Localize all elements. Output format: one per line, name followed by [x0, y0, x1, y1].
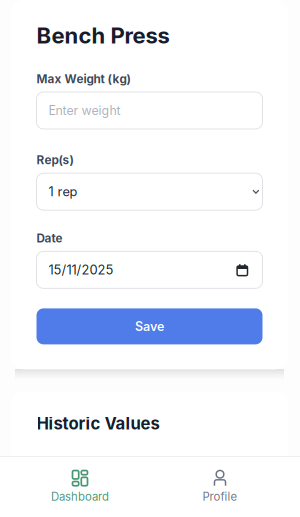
button[interactable]: 15/11/2025: [36, 251, 262, 288]
button[interactable]: Save: [36, 308, 262, 344]
button[interactable]: Dashboard: [20, 465, 140, 509]
staticText: 1 rep: [48, 184, 77, 199]
staticText: Historic Values: [36, 413, 159, 434]
staticText: Max Weight (kg): [36, 72, 130, 86]
staticText: 15/11/2025: [48, 262, 113, 278]
button[interactable]: 1 rep: [36, 173, 262, 210]
staticText: Profile: [202, 490, 237, 503]
staticText: Save: [135, 319, 164, 334]
staticText: Enter weight: [48, 103, 120, 118]
staticText: Date: [36, 231, 62, 245]
button[interactable]: Profile: [160, 465, 280, 509]
staticText: Dashboard: [51, 490, 109, 503]
staticText: Rep(s): [36, 153, 73, 167]
staticText: Bench Press: [36, 22, 169, 49]
